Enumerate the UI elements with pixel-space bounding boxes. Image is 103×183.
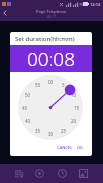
staticText: 55 [35,82,41,88]
button[interactable]: Playlist [10,164,28,182]
staticText: 45 [22,105,28,111]
button[interactable]: Gallery [74,164,92,182]
button[interactable]: CANCEL [54,142,76,153]
staticText: 30 [48,131,54,137]
staticText: 06:17 [47,14,56,19]
staticText: 50 [25,92,31,98]
button[interactable]: Timer [53,164,71,182]
staticText: 40 [25,118,31,124]
staticText: 15 [74,105,80,111]
button[interactable]: Back [0,7,12,19]
staticText: 12:14 [90,2,101,7]
staticText: 35 [35,128,41,134]
staticText: 00 [48,79,54,85]
staticText: OK [77,145,83,150]
staticText: 5 [62,82,65,88]
button[interactable]: Play [30,164,48,182]
staticText: 00:08 [27,46,76,72]
button[interactable]: OK [76,142,90,153]
staticText: Set duration(hh:mm) [15,35,75,43]
staticText: 25 [61,128,67,134]
staticText: Page Telephone [36,9,67,14]
staticText: 10 [71,92,77,98]
staticText: 20 [71,118,77,124]
staticText: CANCEL [57,145,73,150]
staticText: 76 [79,2,84,7]
